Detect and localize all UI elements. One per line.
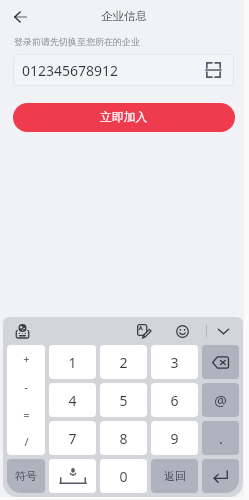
button[interactable]: Hide keyboard (211, 317, 236, 345)
staticText: - (24, 379, 28, 394)
button[interactable]: 6 (151, 383, 198, 417)
staticText: 企业信息 (101, 9, 147, 23)
button[interactable]: 1 (49, 345, 96, 379)
button[interactable] (202, 345, 239, 379)
staticText: 3 (170, 353, 179, 372)
button[interactable]: . (202, 421, 239, 455)
button[interactable]: @ (202, 383, 239, 417)
staticText: 0 (119, 467, 128, 486)
staticText: 2 (119, 353, 128, 372)
staticText: 8 (119, 429, 128, 448)
button[interactable] (202, 459, 239, 493)
staticText: 返回 (164, 469, 186, 483)
staticText: 012345678912 (22, 61, 119, 80)
button[interactable]: 7 (49, 421, 96, 455)
button[interactable]: Emoji (169, 317, 195, 345)
staticText: 7 (68, 429, 77, 448)
button[interactable]: 0 (100, 459, 147, 493)
staticText: 符号 (15, 469, 37, 483)
button[interactable]: Handwriting input (131, 317, 157, 345)
button[interactable]: 012345678912 (13, 54, 234, 86)
staticText: 登录前请先切换至您所在的企业 (14, 36, 140, 47)
staticText: = (23, 407, 30, 422)
button[interactable]: 符号 (7, 459, 45, 493)
button[interactable]: 2 (100, 345, 147, 379)
staticText: 9 (170, 429, 179, 448)
button[interactable]: 立即加入 (13, 103, 235, 132)
button[interactable]: Switch input method (9, 317, 36, 345)
button[interactable]: 9 (151, 421, 198, 455)
staticText: 6 (170, 391, 179, 410)
staticText: 1 (68, 353, 77, 372)
staticText: 4 (68, 391, 77, 410)
button[interactable]: 3 (151, 345, 198, 379)
button[interactable]: Back (8, 5, 32, 29)
button[interactable]: Scan QR code (203, 60, 223, 80)
staticText: / (24, 434, 29, 449)
button[interactable]: 8 (100, 421, 147, 455)
button[interactable]: 4 (49, 383, 96, 417)
button[interactable] (49, 459, 96, 493)
staticText: 5 (119, 391, 128, 410)
staticText: + (23, 351, 30, 366)
button[interactable]: 5 (100, 383, 147, 417)
button[interactable]: 返回 (151, 459, 198, 493)
staticText: 立即加入 (100, 110, 148, 125)
staticText: . (219, 429, 223, 448)
staticText: @ (214, 391, 227, 410)
button[interactable]: + (7, 345, 45, 455)
